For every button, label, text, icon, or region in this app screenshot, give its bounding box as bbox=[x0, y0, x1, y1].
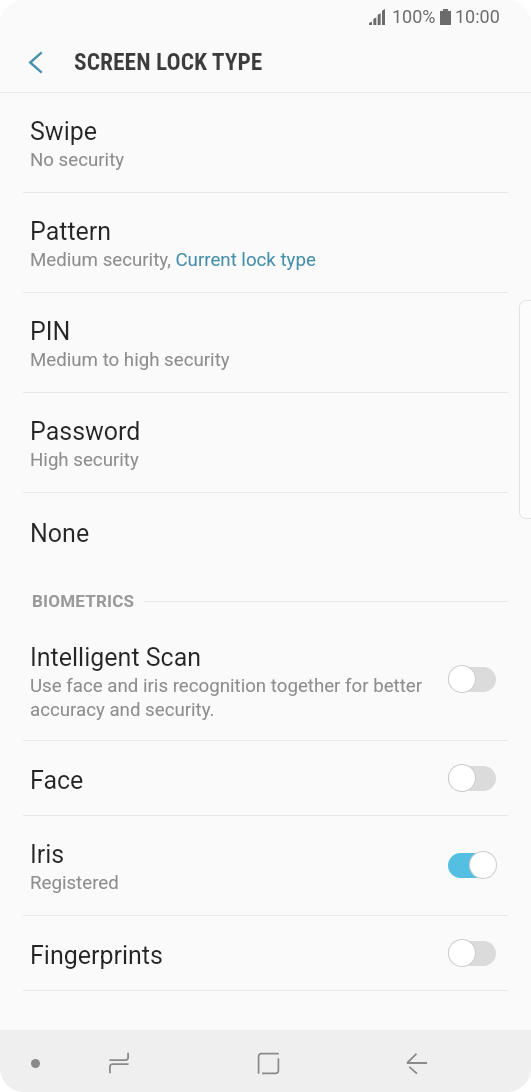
staticText: Medium to high security bbox=[30, 349, 230, 371]
button[interactable]: Pattern bbox=[0, 192, 531, 292]
staticText: Use face and iris recognition together f… bbox=[30, 675, 423, 720]
staticText: Medium security, Current lock type bbox=[30, 249, 316, 271]
button[interactable]: Home bbox=[235, 1032, 301, 1092]
staticText: No security bbox=[30, 149, 125, 171]
staticText: Fingerprints bbox=[30, 941, 163, 970]
staticText: None bbox=[30, 519, 90, 548]
staticText: Face bbox=[30, 766, 84, 795]
staticText: High security bbox=[30, 449, 139, 471]
button[interactable]: Fingerprints bbox=[0, 915, 531, 990]
staticText: Pattern bbox=[30, 217, 112, 246]
button[interactable]: Intelligent Scan bbox=[442, 655, 502, 703]
button[interactable]: Face bbox=[442, 754, 502, 802]
staticText: Registered bbox=[30, 872, 119, 894]
button[interactable]: Back bbox=[384, 1032, 450, 1092]
staticText: Swipe bbox=[30, 117, 98, 146]
staticText: PIN bbox=[30, 317, 71, 346]
button[interactable]: Navigate up bbox=[13, 40, 57, 84]
button[interactable]: Password bbox=[0, 392, 531, 492]
staticText: BIOMETRICS bbox=[32, 591, 135, 611]
button[interactable]: Intelligent Scan bbox=[0, 618, 531, 740]
button[interactable]: Iris bbox=[442, 841, 502, 889]
button[interactable]: Iris bbox=[0, 815, 531, 915]
button[interactable]: Fingerprints bbox=[442, 929, 502, 977]
staticText: Intelligent Scan bbox=[30, 643, 202, 672]
button[interactable]: None bbox=[0, 492, 531, 592]
button[interactable]: Swipe bbox=[0, 92, 531, 192]
button[interactable]: Face bbox=[0, 740, 531, 815]
staticText: Iris bbox=[30, 840, 65, 869]
staticText: Password bbox=[30, 417, 141, 446]
button[interactable]: Show keyboard bbox=[2, 1032, 68, 1092]
button[interactable]: PIN bbox=[0, 292, 531, 392]
button[interactable]: Recent apps bbox=[86, 1032, 152, 1092]
staticText: 100% bbox=[392, 6, 436, 27]
staticText: SCREEN LOCK TYPE bbox=[74, 48, 263, 76]
staticText: 10:00 bbox=[455, 6, 500, 27]
